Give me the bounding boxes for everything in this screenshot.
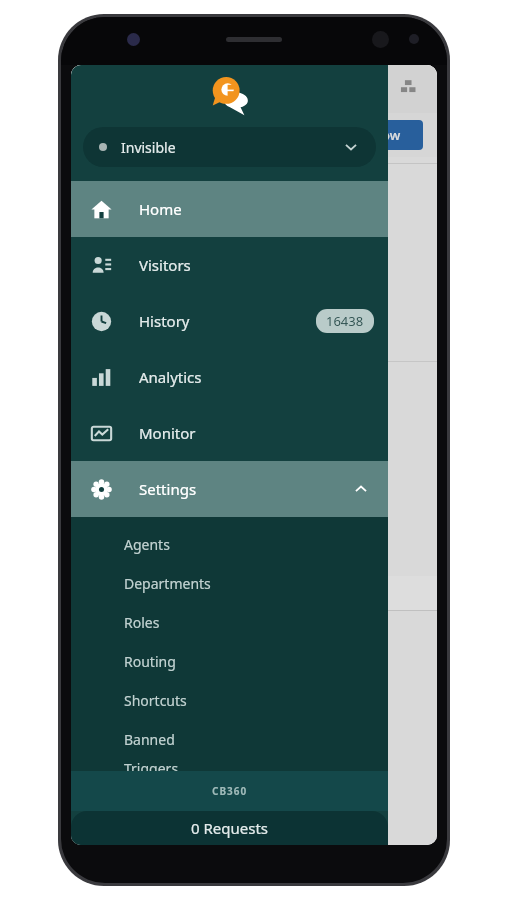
staticText: Shortcuts (124, 691, 187, 710)
button[interactable]: 0 Requests (71, 811, 388, 845)
button[interactable]: Home (71, 181, 388, 237)
staticText: CB360 (212, 784, 248, 798)
staticText: view visitors (81, 216, 156, 234)
staticText: Departments (124, 574, 211, 593)
staticText: Settings (139, 479, 197, 499)
staticText: Routing (124, 652, 176, 671)
button[interactable]: Visitors (71, 237, 388, 293)
button[interactable]: Routing (71, 642, 388, 681)
staticText: Agents (124, 535, 170, 554)
button[interactable]: Agents (71, 525, 388, 564)
staticText: Visitor List (81, 313, 145, 331)
button[interactable]: Triggers (71, 759, 388, 771)
button[interactable]: Shortcuts (71, 681, 388, 720)
staticText: Visitors (139, 255, 191, 275)
button[interactable]: Invisible (83, 127, 376, 167)
button[interactable]: Departments (71, 564, 388, 603)
staticText: WEEKLY (171, 586, 214, 601)
button[interactable]: Banned (71, 720, 388, 759)
button[interactable]: Roles (71, 603, 388, 642)
staticText: your site and (81, 243, 161, 261)
staticText: w leads. (81, 484, 131, 502)
staticText: Invisible (121, 138, 176, 157)
staticText: a conversation (81, 270, 171, 288)
staticText: Analytics (139, 367, 202, 387)
staticText: 16438 (326, 312, 364, 330)
staticText: Now (372, 126, 401, 144)
staticText: Triggers (124, 759, 179, 771)
button[interactable]: Monitor (71, 405, 388, 461)
staticText: History (139, 311, 190, 331)
staticText: Home (139, 199, 182, 219)
staticText: Banned (124, 730, 175, 749)
button[interactable]: Settings (71, 461, 388, 517)
staticText: 0 Requests (191, 818, 269, 838)
button[interactable]: History (71, 293, 388, 349)
button[interactable]: Analytics (71, 349, 388, 405)
staticText: es or (81, 444, 112, 462)
staticText: Monitor (139, 423, 196, 443)
staticText: Roles (124, 613, 160, 632)
